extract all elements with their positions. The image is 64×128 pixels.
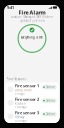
- staticText: Online: [45, 99, 55, 102]
- staticText: 2m ago: [15, 92, 25, 95]
- staticText: Fire sensor 3: [15, 110, 39, 115]
- staticText: 9:41: [7, 5, 14, 10]
- staticText: Prior Sessions: [7, 77, 26, 81]
- staticText: Hallway: [15, 115, 24, 119]
- button[interactable]: Fire sensor 1: [5, 82, 58, 96]
- button[interactable]: Fire sensor 2: [5, 96, 58, 109]
- staticText: 32m ago: [15, 119, 27, 122]
- staticText: Fire sensor 1: [15, 83, 39, 88]
- staticText: Everything is OK: [21, 36, 43, 39]
- staticText: Location: Managed WiFi Kitchen: [10, 15, 53, 19]
- staticText: Online: [45, 112, 55, 116]
- staticText: Online: [45, 85, 55, 89]
- staticText: Fire sensor 2: [15, 97, 39, 102]
- staticText: Fire Alarm: [18, 9, 45, 16]
- button[interactable]: Fire sensor 3: [5, 109, 58, 123]
- staticText: Kitchen: [15, 102, 26, 105]
- staticText: 14m ago: [15, 105, 27, 109]
- staticText: Updated just now: [19, 19, 44, 22]
- staticText: Living room: [15, 88, 31, 92]
